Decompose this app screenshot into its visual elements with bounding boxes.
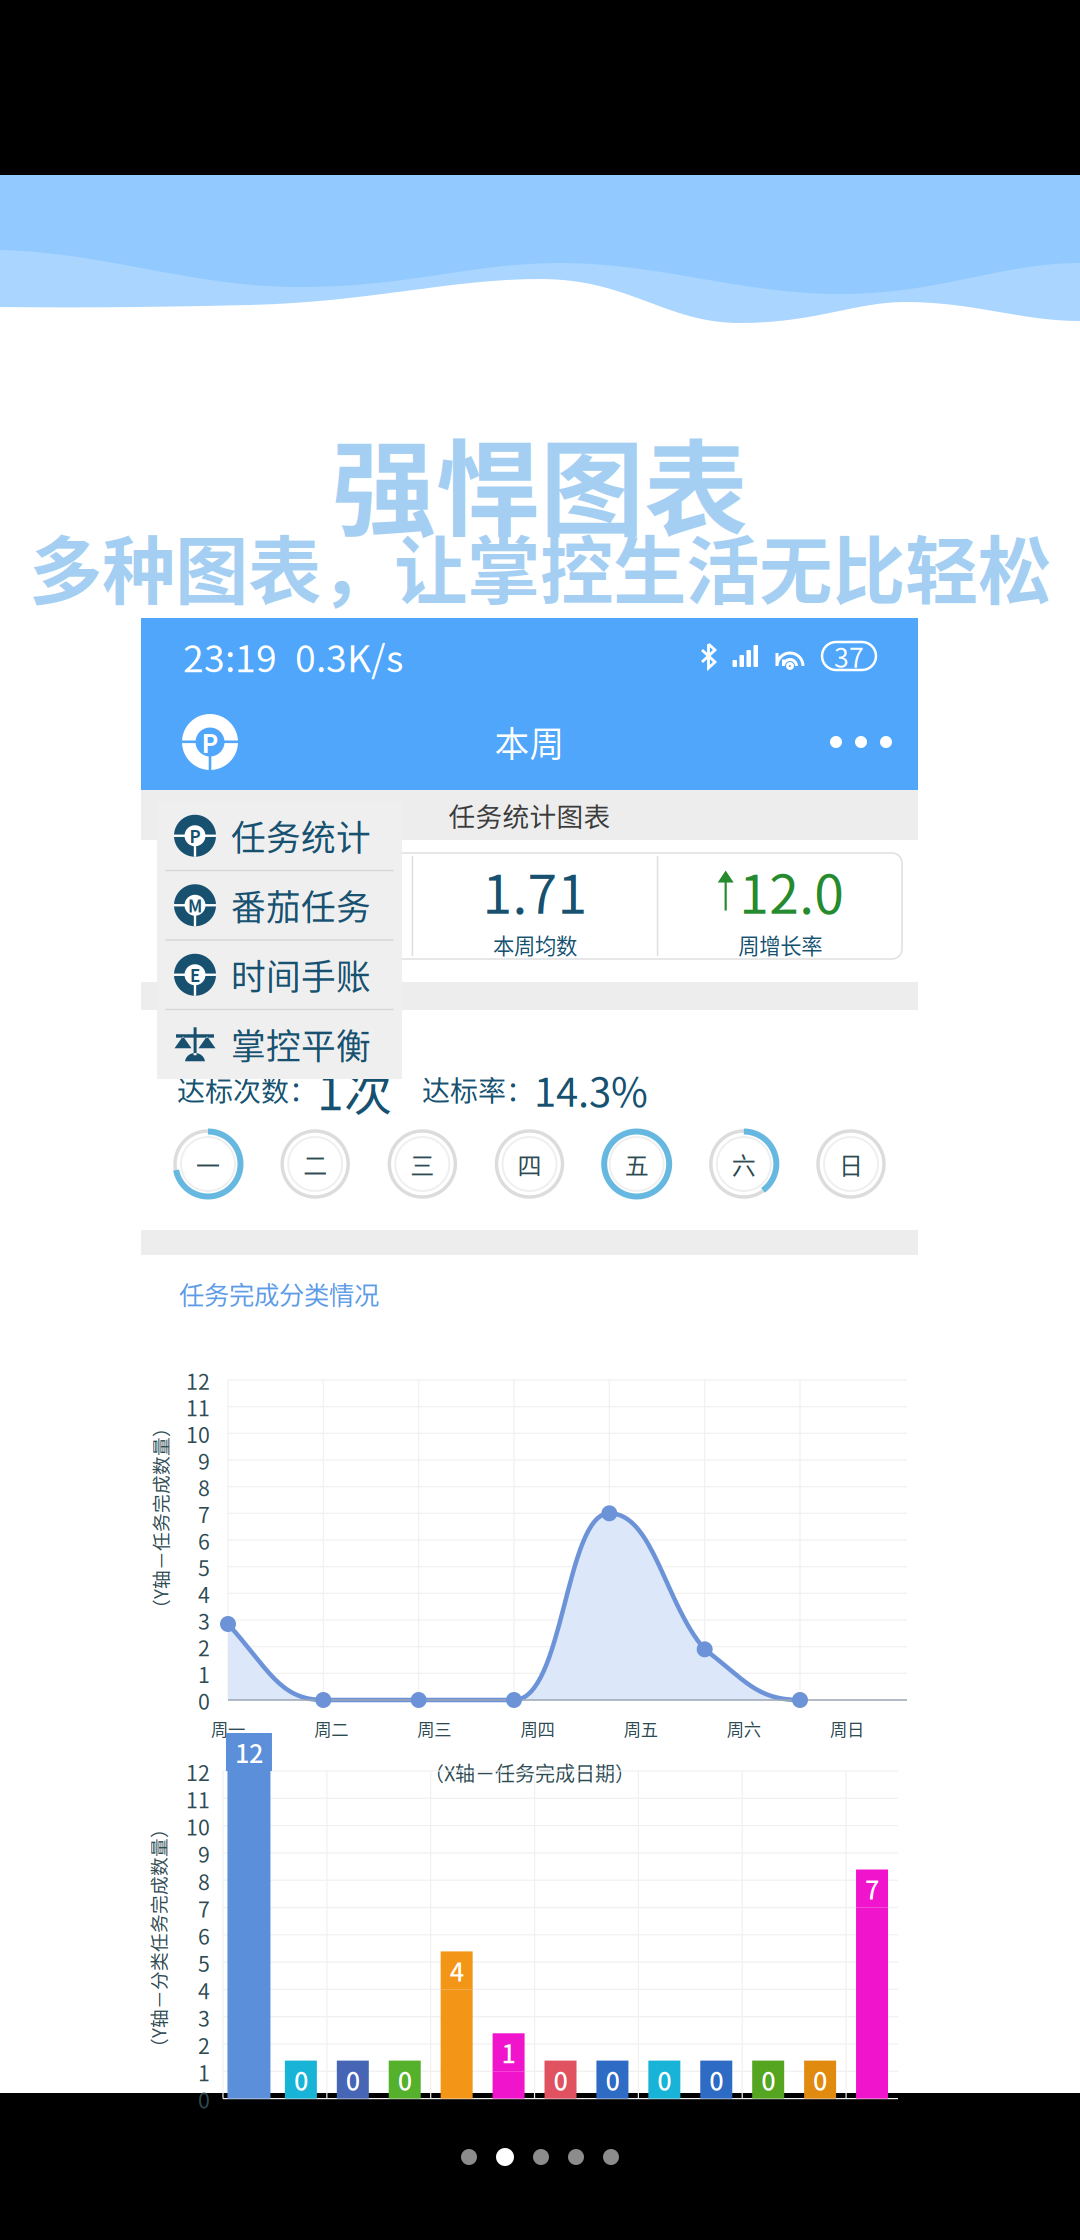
staticText: 0 xyxy=(346,2061,360,2098)
staticText: 二 xyxy=(303,1147,327,1181)
button[interactable]: More options xyxy=(806,696,892,788)
staticText: 五 xyxy=(625,1147,649,1181)
staticText: 四 xyxy=(517,1147,541,1181)
staticText: 1 xyxy=(502,2034,516,2071)
staticText: 5 xyxy=(198,1552,210,1582)
staticText: 本周总数 xyxy=(248,929,332,960)
staticText: 8 xyxy=(198,1472,210,1502)
staticText: 11 xyxy=(186,1783,210,1814)
staticText: 11 xyxy=(186,1392,210,1422)
staticText: 10 xyxy=(186,1811,210,1842)
staticText: 任务统计图表 xyxy=(448,796,610,834)
staticText: E xyxy=(190,963,200,987)
staticText: 9 xyxy=(198,1445,210,1476)
staticText: 0 xyxy=(813,2061,827,2098)
staticText: 一 xyxy=(196,1147,220,1181)
staticText: 1 xyxy=(198,1658,210,1689)
staticText: 12.0 xyxy=(739,852,844,929)
button[interactable]: Switch app xyxy=(167,696,253,788)
staticText: 1.71 xyxy=(482,852,587,929)
staticText: 8 xyxy=(198,1865,210,1896)
staticText: 周二 xyxy=(314,1716,348,1741)
staticText: 番茄任务 xyxy=(231,880,371,930)
staticText: 0 xyxy=(294,2061,308,2098)
staticText: 10 xyxy=(186,1418,210,1449)
staticText: 本周均数 xyxy=(493,929,577,960)
staticText: 0 xyxy=(709,2061,723,2098)
staticText: 3 xyxy=(198,1605,210,1636)
staticText: 达标次数： xyxy=(177,1069,317,1109)
staticText: 0 xyxy=(553,2061,567,2098)
staticText: 12 xyxy=(235,1734,263,1770)
staticText: 12 xyxy=(186,1365,210,1396)
staticText: 0 xyxy=(761,2061,775,2098)
staticText: 0 xyxy=(657,2061,671,2098)
staticText: 6 xyxy=(198,1920,210,1951)
staticText: 掌控平衡 xyxy=(231,1019,371,1069)
button[interactable]: E xyxy=(157,941,402,1009)
staticText: 3 xyxy=(198,2002,210,2033)
staticText: 三 xyxy=(410,1147,434,1181)
staticText: 7 xyxy=(275,852,305,929)
button[interactable]: 掌控平衡 xyxy=(157,1010,402,1078)
staticText: 时间手账 xyxy=(231,950,371,1000)
staticText: P xyxy=(201,724,218,760)
staticText: 多种图表，让掌控生活无比轻松 xyxy=(29,513,1051,619)
staticText: 23:19 xyxy=(183,629,277,683)
staticText: 达标率： xyxy=(422,1069,534,1109)
staticText: 4 xyxy=(198,1578,210,1609)
staticText: 周六 xyxy=(727,1716,761,1741)
button[interactable]: M xyxy=(157,871,402,939)
staticText: 周五 xyxy=(624,1716,658,1741)
staticText: 六 xyxy=(732,1147,756,1181)
staticText: 4 xyxy=(198,1975,210,2005)
staticText: 1 xyxy=(198,2056,210,2087)
staticText: 任务统计 xyxy=(231,811,371,861)
staticText: 0 xyxy=(198,2084,210,2115)
staticText: （Y轴－任务完成数量） xyxy=(60,1504,260,1531)
staticText: 7 xyxy=(865,1870,879,1907)
staticText: 0 xyxy=(605,2061,619,2098)
staticText: M xyxy=(188,893,202,917)
staticText: 周四 xyxy=(520,1716,554,1741)
staticText: 本周 xyxy=(494,717,564,767)
staticText: （X轴－任务完成日期） xyxy=(424,1758,635,1787)
staticText: 9 xyxy=(198,1838,210,1869)
staticText: 5 xyxy=(198,1947,210,1978)
staticText: 周三 xyxy=(417,1716,451,1741)
staticText: 2 xyxy=(198,2029,210,2060)
staticText: 周一 xyxy=(211,1716,245,1741)
staticText: 1次 xyxy=(317,1054,392,1124)
staticText: 7 xyxy=(198,1498,210,1529)
button[interactable]: P xyxy=(157,802,402,870)
staticText: 任务完成分类情况 xyxy=(179,1275,379,1312)
staticText: 0 xyxy=(198,1685,210,1716)
staticText: 7 xyxy=(198,1893,210,1924)
staticText: 日 xyxy=(839,1147,863,1181)
staticText: P xyxy=(189,824,200,848)
staticText: 37 xyxy=(834,637,864,675)
staticText: 12 xyxy=(186,1756,210,1787)
staticText: 4 xyxy=(450,1952,464,1989)
staticText: 0 xyxy=(398,2061,412,2098)
staticText: （Y轴－分类任务完成数量） xyxy=(39,1924,277,1951)
staticText: 周增长率 xyxy=(738,929,822,960)
staticText: 强悍图表 xyxy=(332,407,748,558)
staticText: 6 xyxy=(198,1525,210,1556)
staticText: 2 xyxy=(198,1632,210,1662)
staticText: 0.3K/s xyxy=(295,629,403,683)
staticText: 14.3% xyxy=(534,1060,648,1118)
staticText: 周日 xyxy=(830,1716,864,1741)
